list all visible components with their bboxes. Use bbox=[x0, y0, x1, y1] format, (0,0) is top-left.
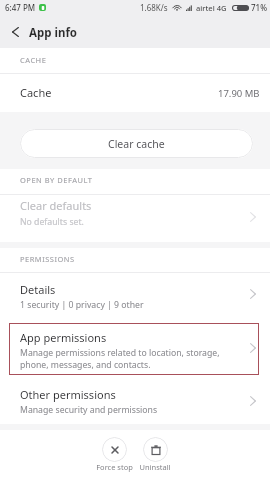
staticText: 71% bbox=[251, 2, 267, 13]
button[interactable] bbox=[0, 324, 270, 375]
staticText: Manage permissions related to location, … bbox=[20, 347, 220, 371]
staticText: App info bbox=[29, 25, 78, 41]
button[interactable] bbox=[0, 375, 270, 424]
staticText: 1 security | 0 privacy | 9 other bbox=[20, 299, 144, 311]
staticText: OPEN BY DEFAULT bbox=[20, 175, 93, 185]
staticText: CACHE bbox=[20, 55, 47, 65]
staticText: 1.68K/s bbox=[140, 2, 168, 13]
staticText: Other permissions bbox=[20, 387, 116, 402]
staticText: Clear defaults bbox=[20, 198, 92, 213]
staticText: App permissions bbox=[20, 330, 107, 345]
staticText: airtel 4G bbox=[196, 3, 227, 13]
button[interactable] bbox=[0, 195, 270, 242]
button[interactable]: Back bbox=[0, 15, 30, 48]
staticText: 6:47 PM bbox=[5, 2, 36, 13]
button[interactable] bbox=[0, 74, 270, 112]
staticText: Manage security and permissions bbox=[20, 404, 158, 416]
staticText: No defaults set. bbox=[20, 216, 84, 228]
button[interactable]: Clear cache bbox=[20, 129, 253, 158]
button[interactable]: Uninstall bbox=[134, 430, 176, 472]
staticText: Clear cache bbox=[108, 137, 165, 151]
staticText: PERMISSIONS bbox=[20, 254, 75, 264]
staticText: Force stop bbox=[96, 462, 133, 472]
staticText: Cache bbox=[20, 85, 52, 100]
staticText: Uninstall bbox=[139, 462, 171, 472]
staticText: 17.90 MB bbox=[218, 87, 260, 100]
button[interactable]: Force stop bbox=[93, 430, 135, 472]
staticText: Details bbox=[20, 282, 56, 297]
button[interactable] bbox=[0, 273, 270, 323]
